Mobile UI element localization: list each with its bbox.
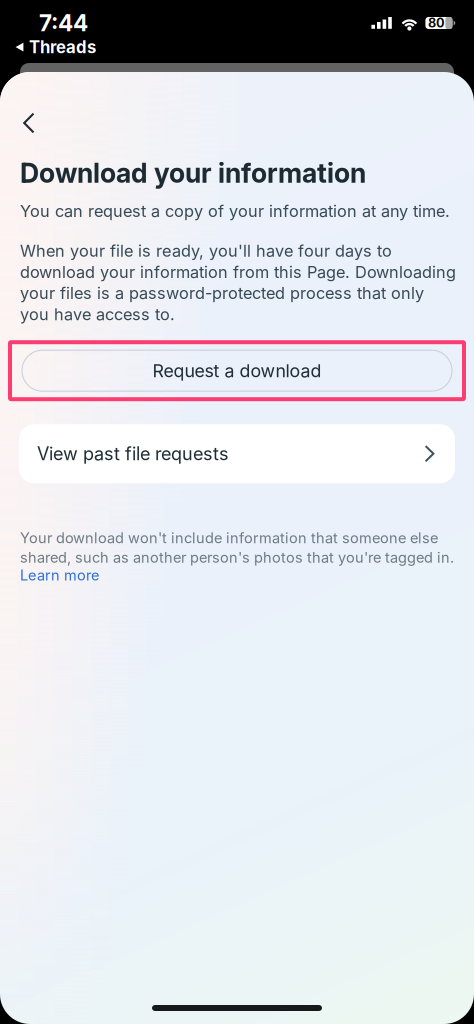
staticText: Learn more bbox=[20, 566, 99, 584]
staticText: You can request a copy of your informati… bbox=[20, 201, 450, 221]
staticText: Download your information bbox=[20, 157, 366, 189]
button[interactable]: Back bbox=[0, 72, 52, 143]
staticText: Request a download bbox=[152, 360, 321, 381]
button[interactable]: Back to Threads bbox=[0, 33, 104, 59]
staticText: Your download won't include information … bbox=[20, 529, 454, 566]
button[interactable]: Request a download bbox=[10, 342, 464, 399]
staticText: 80 bbox=[428, 15, 445, 31]
staticText: Threads bbox=[29, 37, 96, 57]
button[interactable]: Learn more bbox=[0, 566, 111, 587]
staticText: 7:44 bbox=[39, 9, 88, 37]
staticText: When your file is ready, you'll have fou… bbox=[20, 241, 456, 324]
button[interactable]: View past file requests bbox=[19, 424, 455, 483]
staticText: View past file requests bbox=[37, 443, 229, 465]
